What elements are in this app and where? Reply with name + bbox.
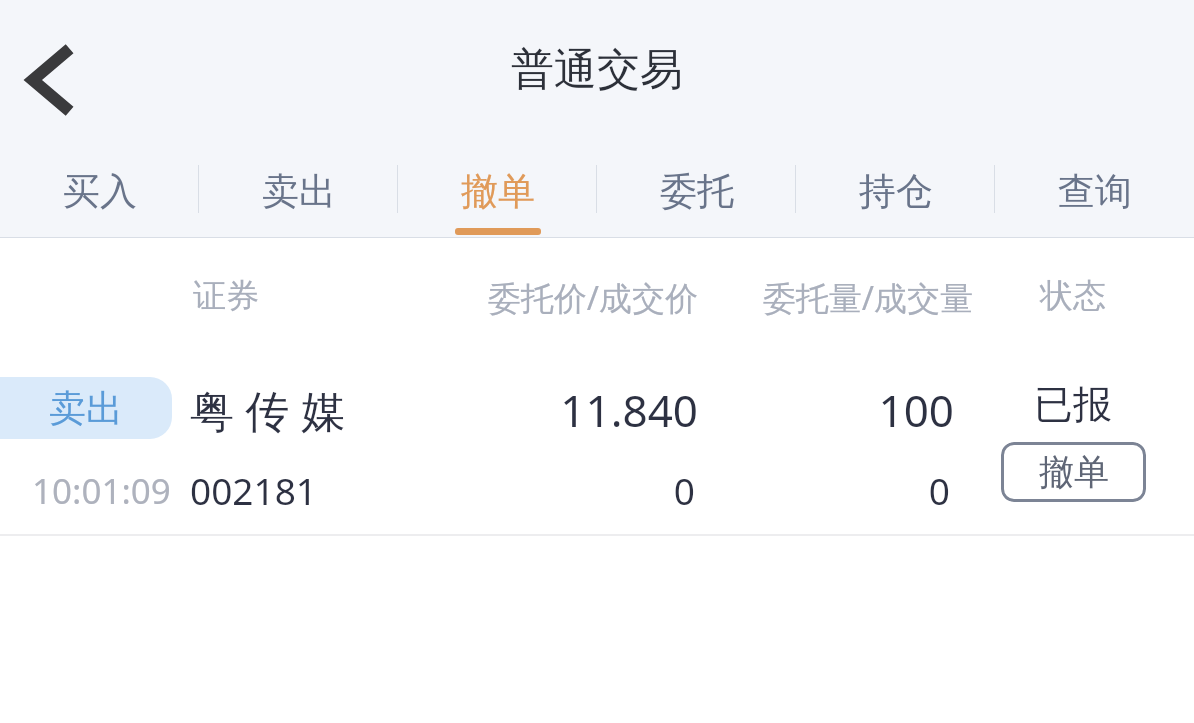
- button[interactable]: 查询: [995, 140, 1194, 238]
- staticText: 委托量/成交量: [742, 275, 973, 320]
- staticText: 卖出: [262, 168, 336, 215]
- button[interactable]: 卖出: [0, 331, 1194, 534]
- staticText: 委托: [660, 168, 734, 215]
- staticText: 已报: [1000, 380, 1146, 429]
- staticText: 撤单: [461, 168, 535, 215]
- staticText: 委托价/成交价: [470, 275, 698, 320]
- button[interactable]: 撤单: [398, 140, 597, 238]
- staticText: 卖出: [49, 385, 123, 432]
- staticText: 粤 传 媒: [190, 380, 345, 440]
- staticText: 11.840: [450, 380, 698, 440]
- button[interactable]: 委托: [597, 140, 796, 238]
- staticText: 买入: [63, 168, 137, 215]
- staticText: 状态: [1000, 275, 1146, 317]
- staticText: 撤单: [1039, 450, 1109, 494]
- button[interactable]: 卖出: [199, 140, 398, 238]
- staticText: 查询: [1058, 168, 1132, 215]
- button[interactable]: 撤单: [1001, 442, 1146, 502]
- staticText: 0: [730, 465, 950, 515]
- staticText: 证券: [193, 275, 259, 317]
- button[interactable]: 买入: [0, 140, 199, 238]
- button[interactable]: 持仓: [796, 140, 995, 238]
- staticText: 10:01:09: [32, 467, 171, 515]
- staticText: 100: [730, 380, 954, 440]
- staticText: 0: [450, 465, 695, 515]
- staticText: 持仓: [859, 168, 933, 215]
- staticText: 普通交易: [511, 43, 683, 97]
- staticText: 002181: [190, 465, 317, 515]
- button[interactable]: Back: [12, 34, 92, 126]
